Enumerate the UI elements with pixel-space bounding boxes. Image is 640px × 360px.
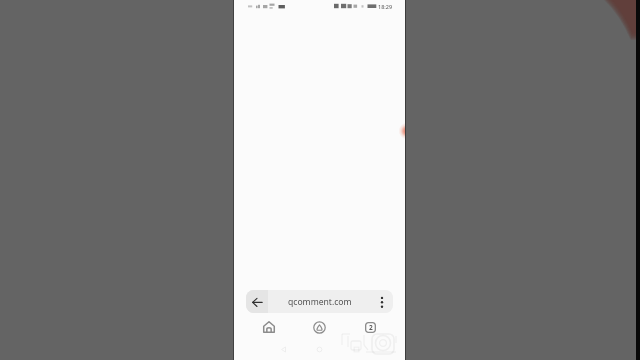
button[interactable]: Tabs: [364, 321, 376, 333]
button[interactable]: Back: [278, 344, 288, 354]
button[interactable]: More options: [371, 290, 393, 313]
staticText: 18:29: [378, 3, 393, 10]
button[interactable]: Home: [263, 321, 275, 333]
button[interactable]: Recent apps: [351, 344, 361, 354]
button[interactable]: Back: [246, 290, 268, 313]
button[interactable]: Home: [314, 344, 324, 354]
staticText: 2: [369, 323, 373, 332]
staticText: qcomment.com: [288, 296, 352, 308]
button[interactable]: Browser home: [312, 320, 326, 334]
